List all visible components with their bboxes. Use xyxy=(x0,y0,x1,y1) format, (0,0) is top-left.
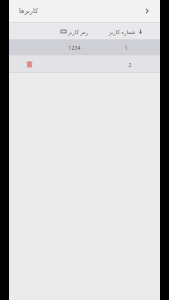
button[interactable]: Delete xyxy=(9,56,160,72)
button[interactable]: 1234 xyxy=(9,40,160,55)
staticText: رمز کاربر xyxy=(68,28,89,35)
staticText: 1 xyxy=(124,44,128,51)
button[interactable]: رمز کاربر xyxy=(49,23,100,39)
button[interactable]: کاربرها xyxy=(9,0,160,22)
staticText: شماره کاربر xyxy=(109,28,136,35)
staticText: 1234 xyxy=(68,44,81,51)
staticText: 2 xyxy=(128,61,132,68)
button[interactable]: شماره کاربر xyxy=(100,23,152,39)
staticText: کاربرها xyxy=(19,7,39,15)
button[interactable]: Next xyxy=(138,2,156,20)
button[interactable]: Delete xyxy=(23,58,35,70)
